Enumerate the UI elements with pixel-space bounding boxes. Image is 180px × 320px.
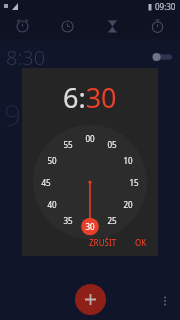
staticText: 25 bbox=[107, 215, 117, 226]
staticText: 50 bbox=[47, 155, 57, 166]
staticText: 09:30 bbox=[155, 1, 176, 12]
staticText: OK bbox=[135, 237, 147, 248]
staticText: 35 bbox=[63, 215, 73, 226]
staticText: 8:30 bbox=[6, 44, 46, 71]
staticText: 30 bbox=[85, 221, 95, 232]
button[interactable]: Add alarm bbox=[75, 284, 106, 315]
button[interactable]: Stopwatch bbox=[135, 13, 180, 39]
button[interactable]: ZRUŠIT bbox=[84, 233, 122, 252]
staticText: 05 bbox=[107, 139, 117, 150]
staticText: 40 bbox=[47, 199, 57, 210]
button[interactable]: Timer bbox=[90, 13, 135, 39]
staticText: 00 bbox=[85, 133, 95, 144]
staticText: 10 bbox=[123, 155, 133, 166]
staticText: 9 bbox=[4, 94, 22, 135]
staticText: 45 bbox=[41, 177, 51, 188]
staticText: ZRUŠIT bbox=[89, 237, 117, 248]
staticText: 20 bbox=[123, 199, 133, 210]
button[interactable]: Clock bbox=[45, 13, 90, 39]
button[interactable]: OK bbox=[130, 233, 152, 252]
staticText: 6:30 bbox=[63, 79, 117, 116]
staticText: 55 bbox=[63, 139, 73, 150]
button[interactable]: More options bbox=[156, 292, 174, 310]
button[interactable]: Alarm toggle bbox=[152, 51, 174, 63]
staticText: 15 bbox=[129, 177, 139, 188]
button[interactable]: 8:30 bbox=[0, 39, 180, 75]
button[interactable]: Alarm bbox=[0, 13, 45, 39]
